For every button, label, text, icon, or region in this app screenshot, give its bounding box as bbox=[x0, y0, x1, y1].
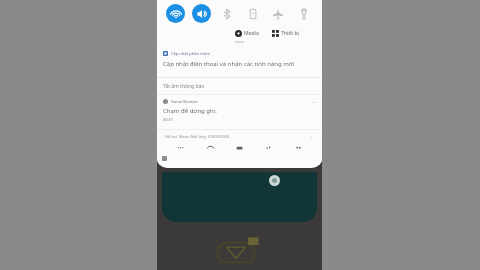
button[interactable]: Game Booster bbox=[157, 95, 322, 129]
staticText: Media bbox=[244, 30, 259, 37]
button[interactable]: Hỗ trợ Menu Nổi ứng 03/05/2025 bbox=[157, 130, 322, 142]
staticText: Thiết bị bbox=[281, 30, 299, 37]
other: Badge bbox=[269, 175, 280, 186]
staticText: Chạm để dừng ghi. bbox=[163, 107, 217, 115]
staticText: ⌄ bbox=[312, 99, 316, 104]
button[interactable]: Volume bbox=[192, 4, 211, 23]
button[interactable]: Action 4 bbox=[263, 143, 274, 154]
button[interactable]: Airplane mode bbox=[268, 4, 287, 23]
staticText: Game Booster bbox=[171, 99, 199, 104]
staticText: Hỗ trợ Menu Nổi ứng 03/05/2025 bbox=[165, 134, 230, 139]
staticText: 00:01 bbox=[163, 117, 174, 122]
button[interactable]: Media bbox=[235, 30, 259, 37]
staticText: Tắt âm thông báo bbox=[163, 83, 205, 90]
button[interactable]: Thiết bị bbox=[272, 30, 299, 37]
button[interactable]: Action 3 bbox=[234, 143, 245, 154]
button[interactable]: Action 5 bbox=[293, 143, 304, 154]
button[interactable]: Flashlight bbox=[294, 4, 313, 23]
staticText: Cập nhật điện thoại và nhận các tính năn… bbox=[163, 60, 295, 68]
button[interactable]: Action 2 bbox=[205, 143, 216, 154]
button[interactable]: Bluetooth bbox=[217, 4, 236, 23]
button[interactable]: Action 1 bbox=[175, 143, 186, 154]
button[interactable]: Wi-Fi bbox=[166, 4, 185, 23]
staticText: ⌄ bbox=[310, 134, 314, 139]
staticText: Cập nhật phần mềm bbox=[171, 51, 210, 56]
button[interactable]: Auto rotate bbox=[243, 4, 262, 23]
button[interactable]: Cập nhật phần mềm bbox=[157, 47, 322, 77]
